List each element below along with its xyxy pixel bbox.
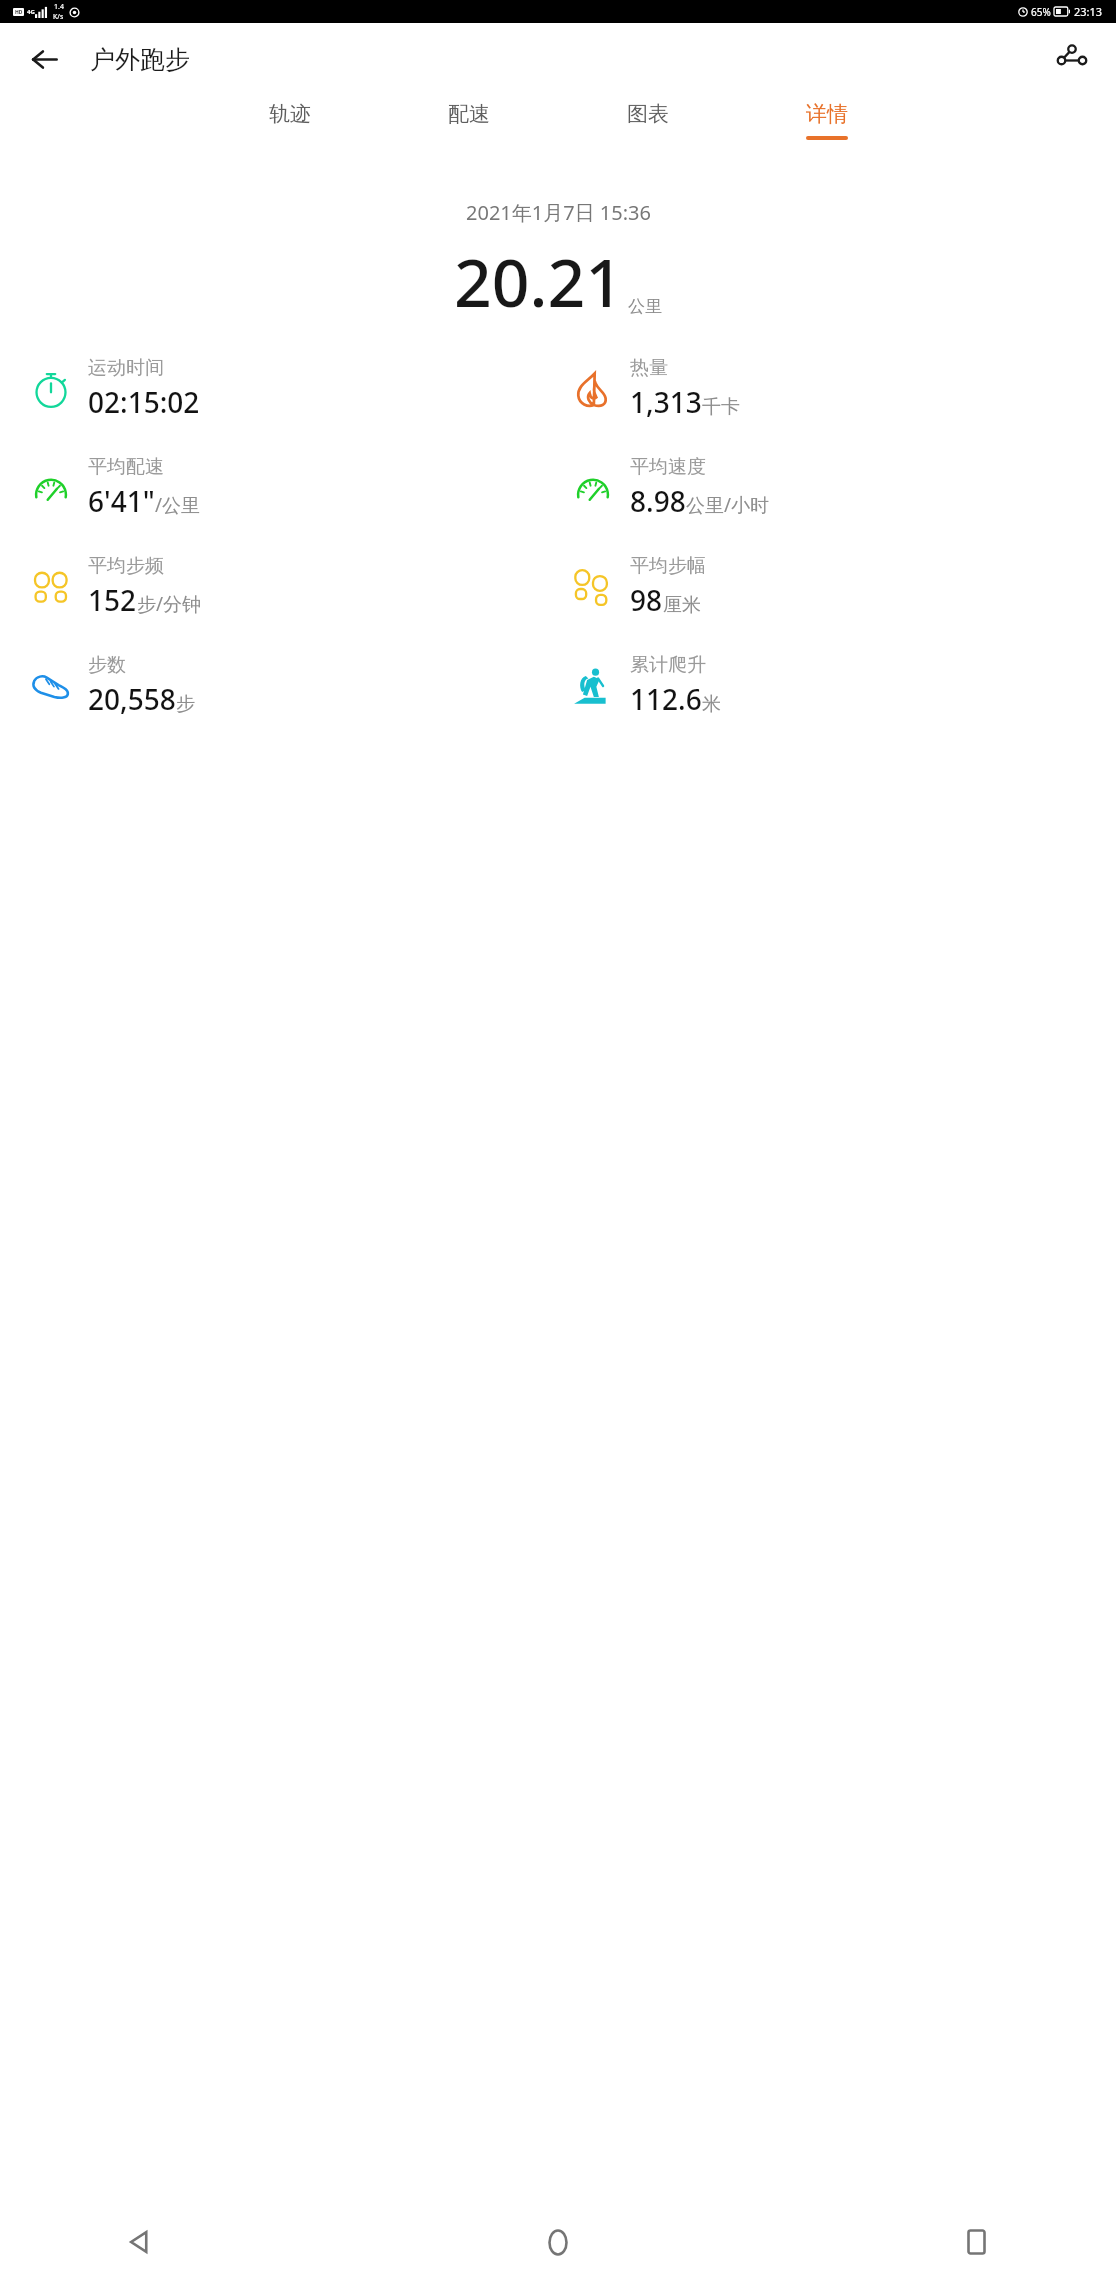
staticText: 热量 <box>630 356 668 380</box>
button[interactable]: 累计爬升 <box>564 653 1106 718</box>
staticText: 千卡 <box>702 395 740 419</box>
staticText: 公里 <box>628 296 662 317</box>
staticText: 步数 <box>88 653 126 677</box>
staticText: 1.4 <box>54 2 64 12</box>
staticText: 累计爬升 <box>630 653 706 677</box>
button[interactable]: 图表 <box>558 95 737 165</box>
staticText: 平均步幅 <box>630 554 706 578</box>
button[interactable]: Back <box>18 33 70 85</box>
button[interactable]: 步数 <box>22 653 564 718</box>
staticText: 步/分钟 <box>137 591 202 617</box>
staticText: 23:13 <box>1074 4 1103 19</box>
button[interactable]: 详情 <box>737 95 916 165</box>
staticText: 65% <box>1031 5 1051 19</box>
staticText: 平均配速 <box>88 455 164 479</box>
staticText: 2021年1月7日 15:36 <box>466 199 651 226</box>
staticText: 20.21 <box>454 236 623 326</box>
staticText: 152 <box>88 581 137 619</box>
button[interactable]: Share <box>1046 33 1098 85</box>
staticText: 4G <box>27 8 35 16</box>
button[interactable]: 运动时间 <box>22 356 564 421</box>
button[interactable]: 平均速度 <box>564 455 1106 520</box>
staticText: 98 <box>630 581 663 619</box>
staticText: K/s <box>53 12 64 22</box>
staticText: 厘米 <box>663 593 701 617</box>
button[interactable]: 平均步频 <box>22 554 564 619</box>
button[interactable]: 平均步幅 <box>564 554 1106 619</box>
staticText: 配速 <box>448 101 490 127</box>
staticText: 平均步频 <box>88 554 164 578</box>
staticText: 运动时间 <box>88 356 164 380</box>
staticText: 112.6 <box>630 680 702 718</box>
staticText: 米 <box>702 692 721 716</box>
staticText: 公里/小时 <box>686 492 770 518</box>
button[interactable]: Home <box>528 2212 588 2272</box>
button[interactable]: 热量 <box>564 356 1106 421</box>
button[interactable]: Back <box>110 2212 170 2272</box>
button[interactable]: 平均配速 <box>22 455 564 520</box>
staticText: 步 <box>176 692 195 716</box>
staticText: 平均速度 <box>630 455 706 479</box>
staticText: /公里 <box>155 492 201 518</box>
staticText: 6'41" <box>88 482 155 520</box>
staticText: 图表 <box>627 101 669 127</box>
staticText: 8.98 <box>630 482 686 520</box>
button[interactable]: 配速 <box>379 95 558 165</box>
staticText: HD <box>15 9 23 16</box>
staticText: 02:15:02 <box>88 383 200 421</box>
staticText: 详情 <box>806 101 848 127</box>
staticText: 20,558 <box>88 680 176 718</box>
button[interactable]: Recent apps <box>946 2212 1006 2272</box>
staticText: 1,313 <box>630 383 702 421</box>
staticText: 户外跑步 <box>90 44 190 75</box>
staticText: 轨迹 <box>269 101 311 127</box>
button[interactable]: 轨迹 <box>200 95 379 165</box>
